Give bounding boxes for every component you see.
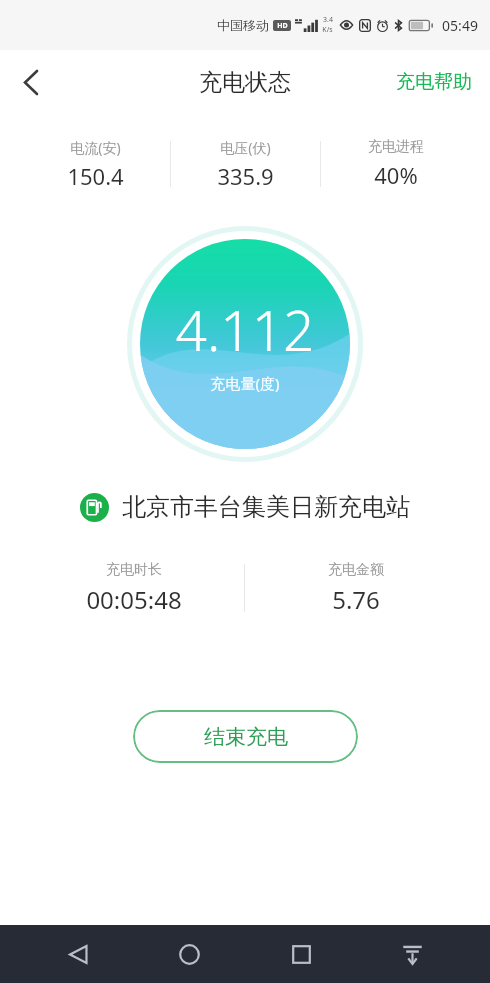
- staticText: 150.4: [67, 161, 124, 191]
- staticText: 充电时长: [106, 561, 162, 579]
- staticText: 电压(伏): [220, 138, 271, 157]
- staticText: 充电帮助: [396, 70, 472, 94]
- button[interactable]: 北京市丰台集美日新充电站: [0, 492, 490, 522]
- button[interactable]: Hide navigation bar: [379, 925, 445, 983]
- staticText: 05:49: [442, 16, 478, 35]
- button[interactable]: 结束充电: [133, 710, 358, 763]
- staticText: 充电量(度): [210, 373, 280, 393]
- staticText: 00:05:48: [86, 583, 182, 616]
- staticText: 充电进程: [368, 138, 424, 156]
- staticText: 结束充电: [204, 724, 288, 750]
- staticText: 5.76: [332, 583, 380, 616]
- staticText: K/s: [322, 25, 333, 35]
- staticText: 充电状态: [199, 68, 291, 97]
- button[interactable]: Back: [4, 55, 58, 109]
- staticText: 335.9: [217, 161, 274, 191]
- staticText: 中国移动: [217, 17, 269, 33]
- staticText: 40%: [374, 160, 418, 190]
- button[interactable]: Recent apps: [268, 925, 334, 983]
- staticText: 3.4: [323, 15, 333, 25]
- button[interactable]: 充电帮助: [390, 62, 478, 102]
- button[interactable]: Back: [45, 925, 111, 983]
- staticText: HD: [277, 21, 288, 31]
- staticText: 充电金额: [328, 561, 384, 579]
- button[interactable]: Home: [156, 925, 222, 983]
- staticText: 北京市丰台集美日新充电站: [122, 492, 410, 522]
- staticText: 电流(安): [70, 138, 121, 157]
- staticText: 4.112: [175, 292, 315, 367]
